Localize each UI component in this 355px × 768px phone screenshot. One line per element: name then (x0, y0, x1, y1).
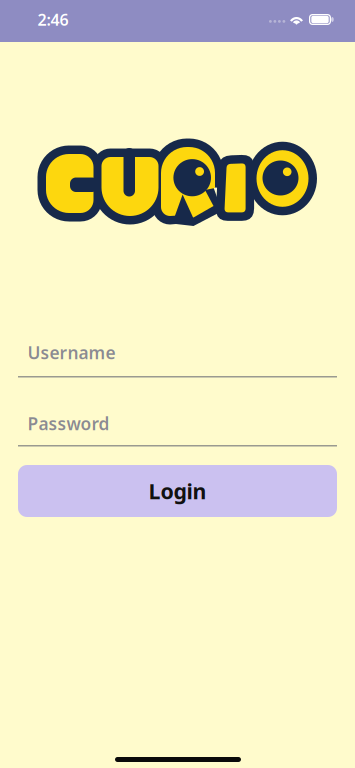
staticText: Login (148, 477, 206, 505)
button[interactable]: Login (18, 465, 337, 517)
staticText: Password (27, 412, 109, 435)
staticText: Username (27, 341, 115, 364)
staticText: 2:46 (37, 9, 68, 30)
